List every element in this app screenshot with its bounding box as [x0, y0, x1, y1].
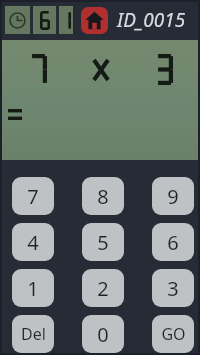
button[interactable]: 8: [82, 177, 124, 215]
staticText: 4: [27, 229, 39, 256]
button[interactable]: 6: [152, 223, 194, 261]
button[interactable]: Timer: [5, 6, 30, 34]
button[interactable]: 7: [12, 177, 54, 215]
button[interactable]: 9: [152, 177, 194, 215]
staticText: ID_0015: [117, 7, 186, 33]
button[interactable]: Home: [81, 7, 108, 34]
staticText: 9: [167, 183, 179, 210]
button[interactable]: 4: [12, 223, 54, 261]
button[interactable]: 2: [82, 269, 124, 307]
button[interactable]: 3: [152, 269, 194, 307]
staticText: 0: [97, 321, 109, 348]
staticText: Del: [21, 323, 46, 345]
button[interactable]: 1: [12, 269, 54, 307]
staticText: GO: [161, 323, 186, 345]
button[interactable]: Del: [12, 315, 54, 353]
staticText: 6: [167, 229, 179, 256]
staticText: 1: [27, 275, 39, 302]
staticText: 3: [167, 275, 179, 302]
button[interactable]: 5: [82, 223, 124, 261]
staticText: 8: [97, 183, 109, 210]
staticText: 7: [27, 183, 39, 210]
button[interactable]: 0: [82, 315, 124, 353]
button[interactable]: GO: [152, 315, 194, 353]
staticText: 2: [97, 275, 109, 302]
staticText: 5: [97, 229, 109, 256]
